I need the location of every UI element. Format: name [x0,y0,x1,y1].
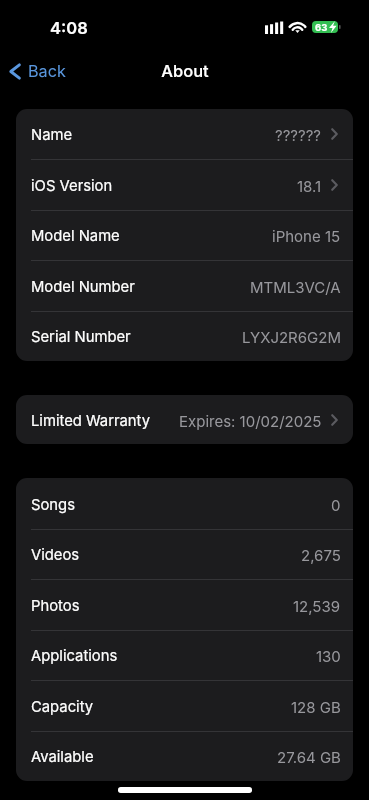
staticText: 27.64 GB [277,748,341,766]
button[interactable]: Songs [16,478,353,529]
staticText: 130 [316,647,341,665]
staticText: LYXJ2R6G2M [242,328,341,346]
button[interactable]: Model Name [16,210,353,260]
button[interactable]: Name [16,109,353,159]
button[interactable]: iOS Version [16,159,353,210]
staticText: Songs [31,496,75,514]
staticText: Expires: 10/02/2025 [179,412,322,430]
staticText: Applications [31,647,118,665]
staticText: Videos [31,546,80,564]
staticText: Serial Number [31,328,131,346]
staticText: Capacity [31,698,94,716]
button[interactable]: Applications [16,630,353,680]
staticText: 128 GB [291,698,341,716]
button[interactable]: Available [16,731,353,781]
other: Wi-Fi [289,20,306,34]
staticText: 12,539 [293,597,341,615]
staticText: 18.1 [297,177,322,195]
button[interactable]: Back [9,57,66,85]
staticText: Limited Warranty [31,412,151,430]
staticText: iOS Version [31,177,113,195]
button[interactable]: Photos [16,579,353,630]
button[interactable]: Model Number [16,260,353,311]
staticText: Name [31,126,73,144]
staticText: Model Number [31,278,135,296]
staticText: 2,675 [301,546,341,564]
staticText: ?????? [275,126,322,144]
staticText: Back [28,61,66,81]
staticText: Available [31,748,94,766]
staticText: 63 [315,22,328,33]
staticText: 4:08 [50,18,88,38]
other: Cellular signal [265,21,284,34]
button[interactable]: Serial Number [16,311,353,361]
staticText: About [161,61,209,81]
button[interactable]: Capacity [16,680,353,731]
staticText: iPhone 15 [272,227,341,245]
other: Battery 63 percent, charging [312,21,338,33]
staticText: Model Name [31,227,120,245]
staticText: 0 [331,496,341,514]
staticText: Photos [31,597,80,615]
button[interactable]: Limited Warranty [16,395,353,444]
button[interactable]: Videos [16,529,353,579]
staticText: MTML3VC/A [250,278,341,296]
